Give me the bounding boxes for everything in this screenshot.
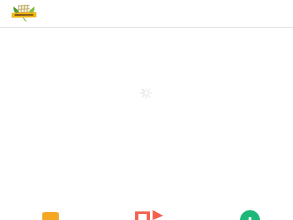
button[interactable]: Loans: [29, 209, 73, 220]
button[interactable]: Home logo: [11, 3, 37, 24]
button[interactable]: Savings: [228, 209, 272, 220]
button[interactable]: Documents: [128, 209, 172, 220]
